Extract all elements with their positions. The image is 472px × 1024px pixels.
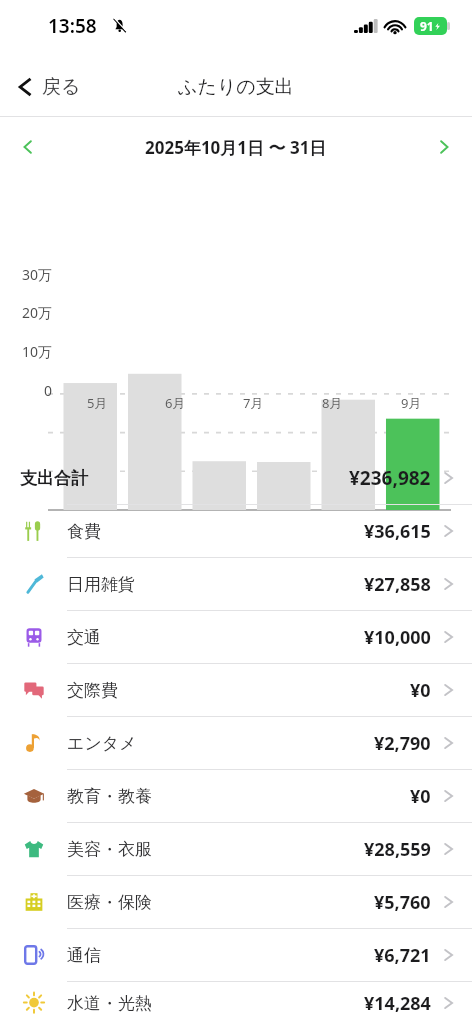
staticText: 2025年10月1日 〜 31日: [145, 136, 327, 159]
staticText: 支出合計: [20, 468, 88, 489]
staticText: 交通: [67, 627, 101, 648]
staticText: ¥14,284: [364, 991, 431, 1016]
button[interactable]: 戻る: [0, 67, 93, 107]
staticText: 91: [420, 18, 434, 34]
staticText: 6月: [165, 394, 186, 412]
staticText: ¥28,559: [364, 837, 431, 862]
button[interactable]: 交通: [0, 611, 472, 663]
button[interactable]: 食費: [0, 505, 472, 557]
button[interactable]: 医療・保険: [0, 876, 472, 928]
button[interactable]: エンタメ: [0, 717, 472, 769]
staticText: 13:58: [48, 13, 97, 39]
staticText: ¥10,000: [364, 625, 431, 650]
staticText: ふたりの支出: [178, 75, 294, 99]
staticText: 交際費: [67, 680, 118, 701]
staticText: ¥2,790: [374, 731, 431, 756]
staticText: 0: [10, 381, 52, 400]
staticText: 30万: [10, 265, 52, 284]
staticText: 20万: [10, 303, 52, 322]
button[interactable]: 美容・衣服: [0, 823, 472, 875]
button[interactable]: 水道・光熱: [0, 982, 472, 1024]
staticText: ¥0: [410, 784, 431, 809]
staticText: ¥36,615: [364, 519, 431, 544]
staticText: 10万: [10, 342, 52, 361]
staticText: 8月: [322, 394, 343, 412]
button[interactable]: 通信: [0, 929, 472, 981]
staticText: 7月: [243, 394, 264, 412]
staticText: 日用雑貨: [67, 574, 135, 595]
button[interactable]: Next month: [418, 125, 472, 169]
staticText: エンタメ: [67, 733, 137, 754]
button[interactable]: 支出合計: [0, 452, 472, 504]
staticText: 戻る: [42, 75, 81, 99]
staticText: 美容・衣服: [67, 839, 152, 860]
staticText: 9月: [401, 394, 422, 412]
staticText: ¥236,982: [349, 465, 431, 491]
staticText: ¥6,721: [374, 943, 431, 968]
staticText: 食費: [67, 521, 101, 542]
staticText: ¥5,760: [374, 890, 431, 915]
staticText: 水道・光熱: [67, 993, 152, 1014]
staticText: 教育・教養: [67, 786, 152, 807]
button[interactable]: 日用雑貨: [0, 558, 472, 610]
staticText: 5月: [87, 394, 108, 412]
staticText: ¥0: [410, 678, 431, 703]
staticText: 医療・保険: [67, 892, 152, 913]
button[interactable]: Previous month: [0, 125, 54, 169]
staticText: ¥27,858: [364, 572, 431, 597]
staticText: 通信: [67, 945, 101, 966]
button[interactable]: 交際費: [0, 664, 472, 716]
button[interactable]: 教育・教養: [0, 770, 472, 822]
